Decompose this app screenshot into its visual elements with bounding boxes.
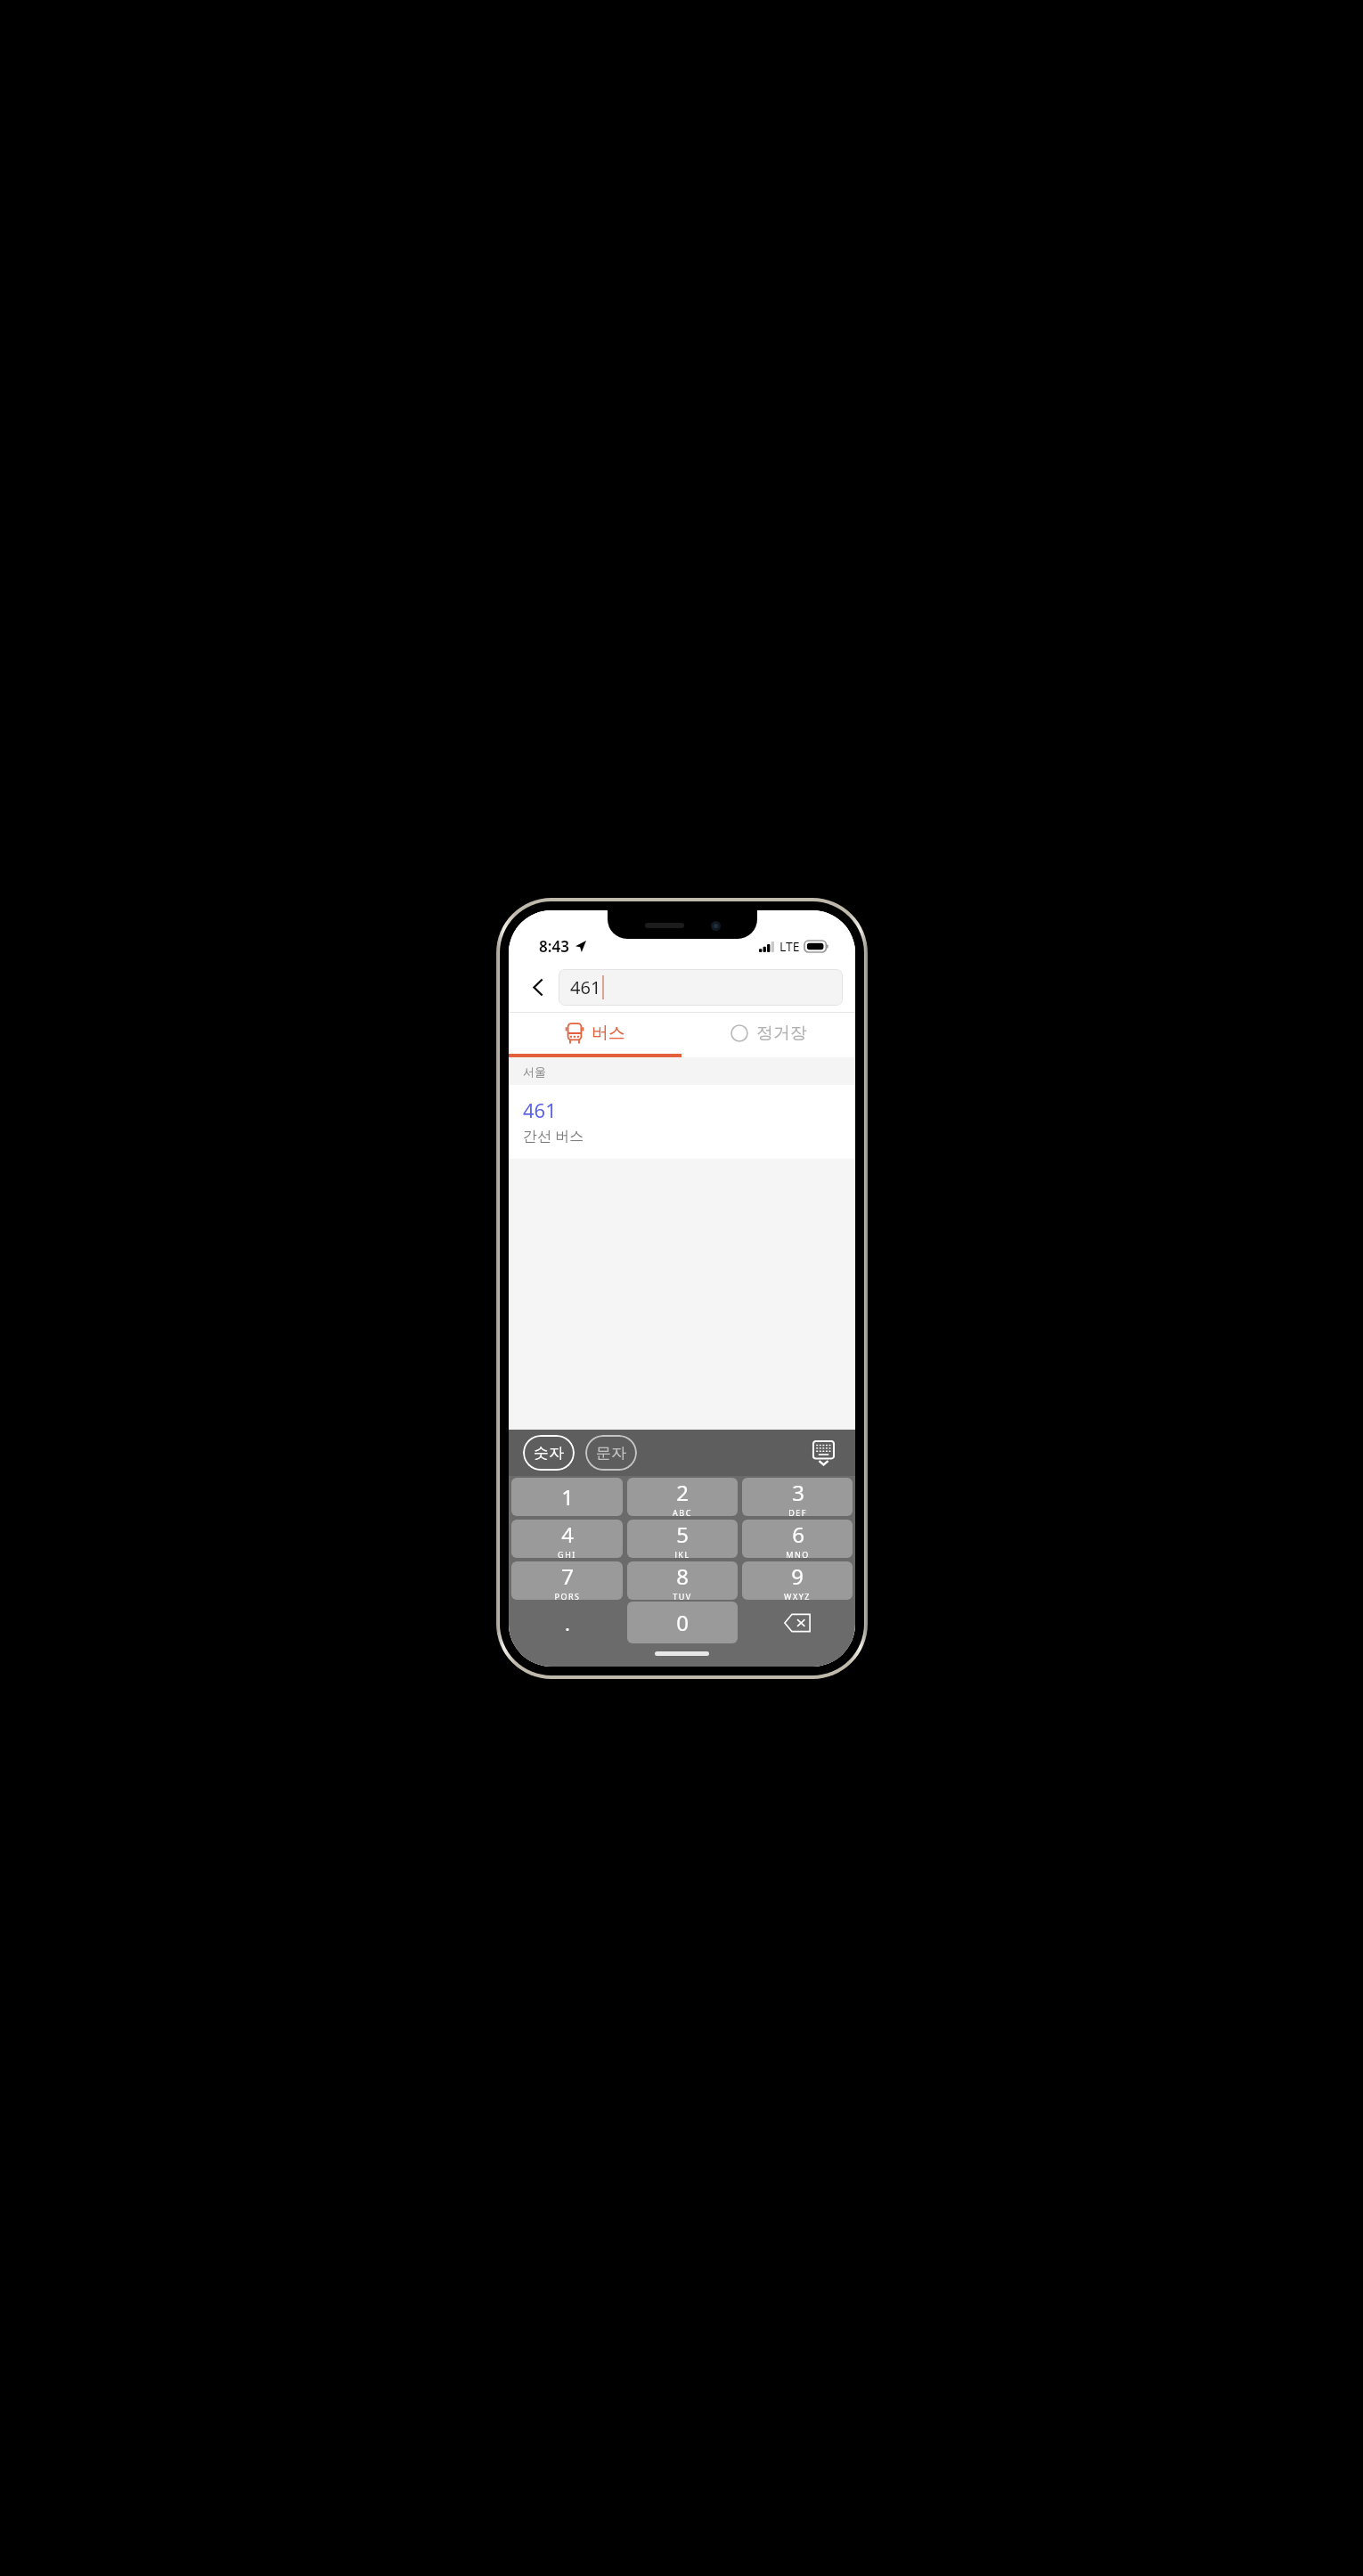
button[interactable]: 정거장 — [681, 1013, 855, 1054]
staticText: LTE — [779, 938, 800, 955]
staticText: 2 — [676, 1478, 689, 1507]
staticText: WXYZ — [784, 1591, 811, 1600]
button[interactable]: 8 — [627, 1561, 738, 1600]
staticText: . — [565, 1610, 570, 1636]
button[interactable]: 문자 — [585, 1435, 637, 1471]
staticText: DEF — [788, 1507, 807, 1516]
staticText: 숫자 — [534, 1444, 564, 1463]
staticText: 0 — [676, 1608, 689, 1637]
staticText: 3 — [792, 1478, 804, 1507]
staticText: 간선 버스 — [523, 1126, 584, 1145]
staticText: 461 — [523, 1096, 557, 1123]
button[interactable]: Backspace — [742, 1602, 853, 1643]
button[interactable]: 3 — [742, 1478, 853, 1516]
staticText: TUV — [673, 1591, 692, 1600]
staticText: 6 — [792, 1520, 804, 1549]
staticText: PQRS — [554, 1591, 581, 1600]
button[interactable]: Hide keyboard — [805, 1435, 841, 1471]
button[interactable]: 461 — [509, 1085, 855, 1159]
staticText: 4 — [561, 1520, 574, 1549]
button[interactable]: 0 — [627, 1602, 738, 1643]
staticText: 461 — [570, 975, 601, 999]
button[interactable]: 9 — [742, 1561, 853, 1600]
button[interactable]: 1 — [511, 1478, 623, 1516]
staticText: 1 — [561, 1482, 574, 1512]
staticText: MNO — [786, 1549, 810, 1558]
staticText: ABC — [673, 1507, 692, 1516]
staticText: GHI — [558, 1549, 576, 1558]
button[interactable]: 버스 — [509, 1013, 681, 1054]
staticText: 7 — [561, 1561, 574, 1591]
button[interactable]: 5 — [627, 1520, 738, 1558]
button[interactable]: . — [511, 1602, 623, 1643]
staticText: 서울 — [523, 1064, 546, 1079]
staticText: 9 — [791, 1561, 804, 1591]
button[interactable]: 2 — [627, 1478, 738, 1516]
button[interactable]: Back — [518, 966, 559, 1007]
button[interactable]: 6 — [742, 1520, 853, 1558]
staticText: 정거장 — [756, 1023, 807, 1044]
staticText: JKL — [674, 1549, 690, 1558]
button[interactable]: 숫자 — [523, 1435, 575, 1471]
button[interactable]: 7 — [511, 1561, 623, 1600]
staticText: 5 — [676, 1520, 689, 1549]
staticText: 문자 — [596, 1444, 626, 1463]
staticText: 8 — [676, 1561, 689, 1591]
button[interactable]: 4 — [511, 1520, 623, 1558]
button[interactable]: 461 — [559, 969, 843, 1006]
staticText: 8:43 — [539, 936, 569, 957]
staticText: 버스 — [592, 1023, 625, 1044]
